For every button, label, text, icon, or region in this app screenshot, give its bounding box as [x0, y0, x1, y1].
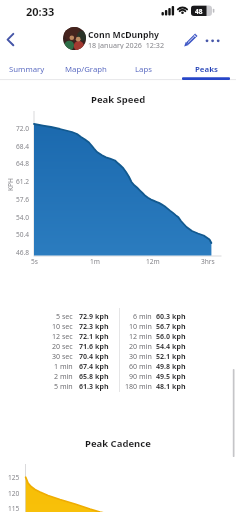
- staticText: Peak Cadence: [85, 437, 151, 450]
- staticText: 115: [8, 504, 20, 512]
- button[interactable]: [2, 28, 20, 50]
- staticText: 65.8 kph: [79, 371, 109, 381]
- button[interactable]: [202, 32, 224, 49]
- staticText: Peaks: [195, 64, 218, 75]
- button[interactable]: [63, 27, 86, 50]
- staticText: 67.4 kph: [79, 361, 109, 371]
- staticText: 52.1 kph: [156, 351, 186, 361]
- staticText: 61.3 kph: [79, 381, 109, 391]
- staticText: Peak Speed: [91, 93, 146, 106]
- staticText: 46.8: [16, 248, 30, 257]
- staticText: 64.8: [16, 159, 30, 168]
- staticText: 125: [8, 473, 20, 482]
- staticText: 2 min: [54, 371, 73, 381]
- staticText: 5s: [31, 257, 38, 266]
- staticText: 20 min: [129, 341, 152, 351]
- staticText: 56.0 kph: [156, 331, 186, 341]
- staticText: 5 min: [54, 381, 73, 391]
- staticText: 6 min: [133, 311, 152, 321]
- staticText: 1 min: [54, 361, 73, 371]
- button[interactable]: [180, 28, 202, 50]
- staticText: Summary: [9, 64, 45, 75]
- staticText: 12 min: [129, 331, 152, 341]
- staticText: 48: [195, 7, 203, 16]
- staticText: 48.1 kph: [156, 381, 186, 391]
- staticText: Map/Graph: [65, 64, 107, 75]
- staticText: 70.4 kph: [79, 351, 109, 361]
- staticText: 90 min: [129, 371, 152, 381]
- button[interactable]: Map/Graph: [58, 58, 113, 80]
- staticText: 72.3 kph: [79, 321, 109, 331]
- staticText: 30 min: [129, 351, 152, 361]
- staticText: 3hrs: [201, 257, 215, 266]
- button[interactable]: Laps: [125, 58, 161, 80]
- staticText: 50.4: [16, 230, 30, 239]
- staticText: 10 sec: [52, 321, 73, 331]
- staticText: 72.9 kph: [79, 311, 109, 321]
- staticText: 10 min: [129, 321, 152, 331]
- staticText: 61.2: [16, 177, 30, 186]
- staticText: 57.6: [16, 195, 30, 204]
- staticText: 60 min: [129, 361, 152, 371]
- staticText: 56.7 kph: [156, 321, 186, 331]
- staticText: 5 sec: [56, 311, 73, 321]
- staticText: 12m: [146, 257, 160, 266]
- staticText: 18 January 2026 12:32: [88, 40, 165, 49]
- button[interactable]: Peaks: [182, 58, 230, 80]
- staticText: 49.8 kph: [156, 361, 186, 371]
- button[interactable]: Summary: [4, 58, 50, 80]
- staticText: 120: [8, 489, 20, 498]
- staticText: 72.0: [16, 124, 30, 133]
- staticText: KPH: [6, 178, 15, 191]
- staticText: 20 sec: [52, 341, 73, 351]
- staticText: 20:33: [26, 4, 55, 19]
- staticText: 30 sec: [52, 351, 73, 361]
- staticText: 60.3 kph: [156, 311, 186, 321]
- staticText: Laps: [135, 64, 152, 75]
- staticText: 71.6 kph: [79, 341, 109, 351]
- staticText: 12 sec: [52, 331, 73, 341]
- staticText: 68.4: [16, 142, 30, 151]
- staticText: 54.0: [16, 213, 30, 222]
- staticText: 1m: [90, 257, 100, 266]
- staticText: Conn McDunphy: [88, 29, 159, 40]
- staticText: 180 min: [125, 381, 152, 391]
- staticText: 54.4 kph: [156, 341, 186, 351]
- staticText: 49.5 kph: [156, 371, 186, 381]
- staticText: 72.1 kph: [79, 331, 109, 341]
